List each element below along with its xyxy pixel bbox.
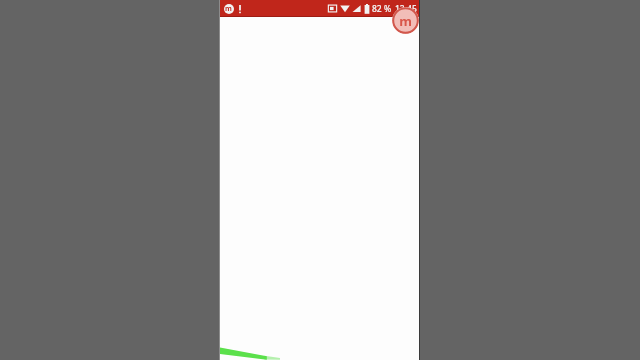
staticText: m — [225, 4, 232, 14]
staticText: 12:45 — [395, 3, 417, 15]
staticText: m — [399, 12, 412, 30]
staticText: 82 % — [372, 3, 392, 15]
button[interactable]: Screen recorder watermark — [392, 7, 419, 34]
